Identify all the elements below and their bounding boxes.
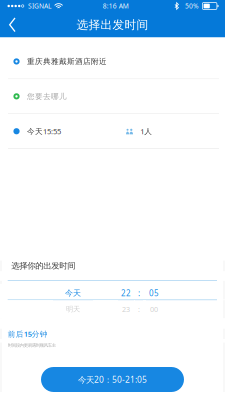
button[interactable]: 您要去哪儿 (0, 79, 225, 113)
staticText: 1人 (140, 126, 152, 136)
staticText: SIGNAL (28, 1, 51, 11)
staticText: 今天 (65, 288, 81, 298)
staticText: 22 (121, 288, 131, 299)
staticText: 50% (185, 1, 199, 11)
staticText: 8:16 AM (103, 1, 129, 11)
staticText: 选择出发时间 (76, 17, 148, 32)
staticText: 23 (122, 304, 130, 314)
button[interactable]: 重庆典雅戴斯酒店附近 (0, 44, 225, 79)
staticText: : (138, 304, 140, 314)
staticText: : (138, 288, 140, 299)
staticText: 05 (149, 288, 159, 299)
staticText: 时间段内更易遇到顺风车主 (8, 342, 56, 348)
staticText: 前后15分钟 (8, 329, 48, 339)
staticText: 重庆典雅戴斯酒店附近 (27, 57, 107, 66)
staticText: 明天 (66, 305, 80, 314)
button[interactable]: 返回 (0, 12, 34, 37)
staticText: 您要去哪儿 (27, 92, 67, 101)
staticText: 选择你的出发时间 (11, 260, 75, 271)
button[interactable]: 今天15:55 (0, 114, 225, 148)
button[interactable]: 今天20：50-21:05 (41, 367, 184, 392)
staticText: 00 (150, 304, 158, 314)
staticText: 今天15:55 (27, 126, 61, 136)
staticText: 今天20：50-21:05 (78, 374, 147, 385)
